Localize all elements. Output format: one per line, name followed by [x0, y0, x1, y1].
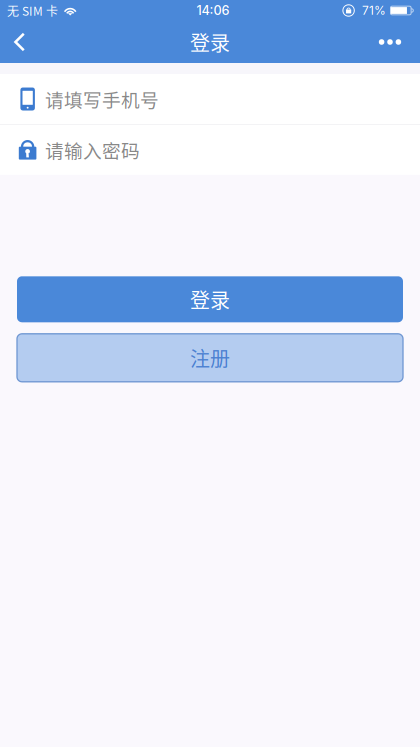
button[interactable]: 请填写手机号: [0, 74, 420, 124]
button[interactable]: 更多: [370, 21, 420, 63]
button[interactable]: 注册: [0, 334, 420, 382]
staticText: 请填写手机号: [45, 85, 159, 112]
staticText: 14:06: [196, 3, 229, 18]
staticText: 注册: [190, 343, 230, 372]
button[interactable]: 请输入密码: [0, 125, 420, 175]
button[interactable]: 登录: [0, 276, 420, 322]
staticText: 无 SIM 卡: [7, 2, 58, 19]
staticText: 登录: [190, 285, 230, 314]
staticText: 登录: [190, 27, 230, 56]
button[interactable]: 返回: [0, 21, 38, 63]
staticText: 71%: [362, 3, 386, 18]
staticText: 请输入密码: [45, 136, 140, 163]
